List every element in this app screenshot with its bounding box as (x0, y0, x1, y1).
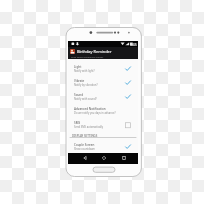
button[interactable]: Home (99, 154, 108, 162)
button[interactable]: Back (80, 154, 89, 162)
staticText: Light (74, 65, 82, 69)
staticText: Send SMS automatically (74, 125, 104, 129)
staticText: Notify by vibration? (74, 83, 98, 87)
button[interactable]: Sound (68, 88, 138, 102)
button[interactable]: Recent apps (119, 154, 128, 162)
staticText: Couple Screen (74, 143, 95, 147)
button[interactable]: Vibrate (68, 74, 138, 88)
staticText: Sound (74, 93, 84, 97)
staticText: Show countdown (74, 147, 95, 151)
staticText: Advanced Notification (74, 107, 106, 111)
staticText: Do we notify you days in advance? (74, 111, 116, 115)
button[interactable]: Light (68, 60, 138, 74)
staticText: Birthday Reminder (77, 49, 112, 54)
staticText: DISPLAY SETTINGS (72, 134, 98, 138)
staticText: 3:45 (130, 42, 137, 46)
staticText: Vibrate (74, 79, 85, 83)
button[interactable]: Couple Screen (68, 138, 138, 153)
staticText: Show default notification settings (71, 56, 104, 59)
staticText: SMS (74, 121, 81, 125)
staticText: Notify with sound? (74, 97, 97, 101)
button[interactable]: SMS (68, 116, 138, 130)
button[interactable]: Birthday Reminder (68, 47, 138, 56)
staticText: Notify with light? (74, 69, 95, 73)
button[interactable]: Advanced Notification (68, 102, 138, 116)
